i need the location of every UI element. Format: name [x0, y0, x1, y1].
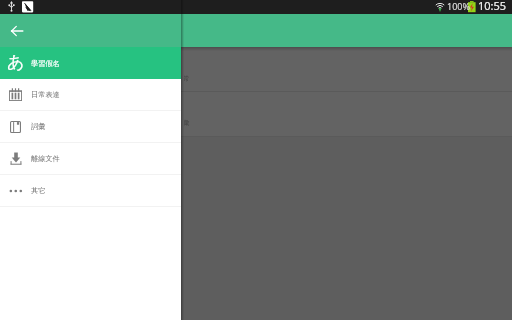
staticText: 離線文件: [31, 154, 60, 163]
staticText: 100%: [447, 0, 470, 12]
button[interactable]: 日常表達: [0, 79, 181, 110]
staticText: 詞彙: [31, 122, 46, 131]
staticText: 彙: [184, 119, 189, 127]
button[interactable]: あ: [0, 47, 181, 79]
staticText: あ: [7, 52, 25, 73]
button[interactable]: Back: [0, 14, 33, 47]
staticText: 其它: [31, 186, 46, 195]
button[interactable]: 其它: [0, 175, 181, 206]
staticText: 10:55: [478, 0, 507, 12]
button[interactable]: 離線文件: [0, 143, 181, 174]
staticText: 常: [184, 75, 189, 83]
staticText: 日常表達: [31, 90, 60, 99]
button[interactable]: 詞彙: [0, 111, 181, 142]
staticText: 學習假名: [31, 59, 60, 68]
